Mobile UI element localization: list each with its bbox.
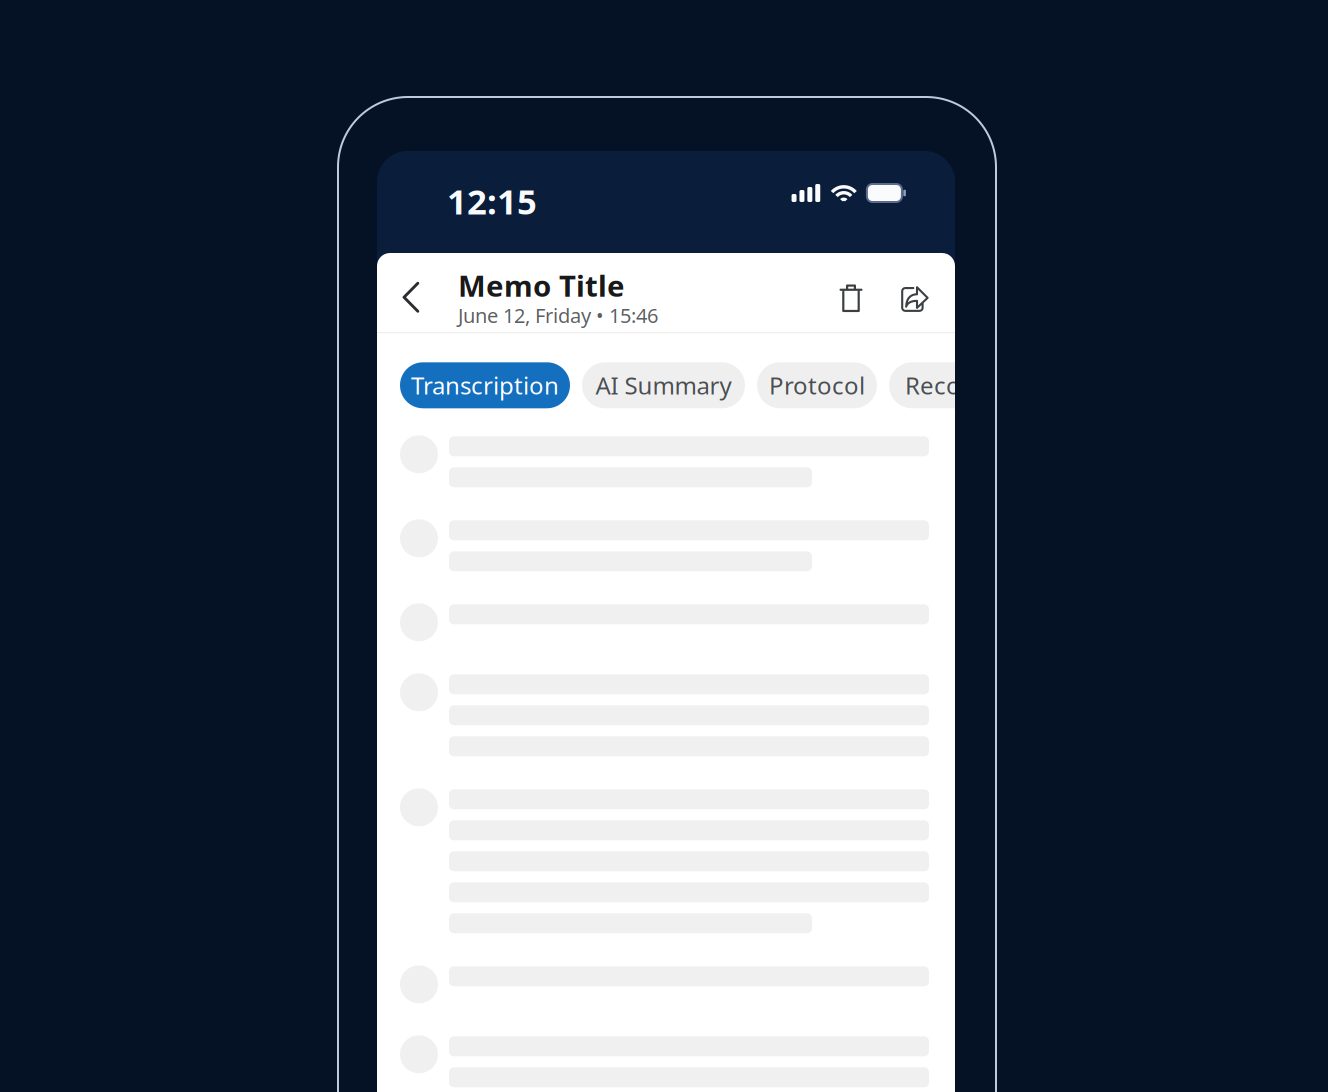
staticText: Transcription <box>411 369 559 401</box>
button[interactable]: Delete <box>829 257 887 324</box>
staticText: Memo Title <box>458 266 625 305</box>
button[interactable]: Transcription <box>400 362 570 408</box>
button[interactable]: AI Summary <box>582 362 745 408</box>
button[interactable]: Share <box>887 256 939 325</box>
button[interactable]: Recording <box>889 362 1037 408</box>
button[interactable]: Protocol <box>757 362 877 408</box>
staticText: June 12, Friday • 15:46 <box>458 302 658 329</box>
button[interactable]: Back <box>394 255 428 327</box>
staticText: Recording <box>905 369 1021 401</box>
staticText: Protocol <box>769 369 865 401</box>
staticText: 12:15 <box>447 178 537 224</box>
staticText: AI Summary <box>595 369 731 401</box>
